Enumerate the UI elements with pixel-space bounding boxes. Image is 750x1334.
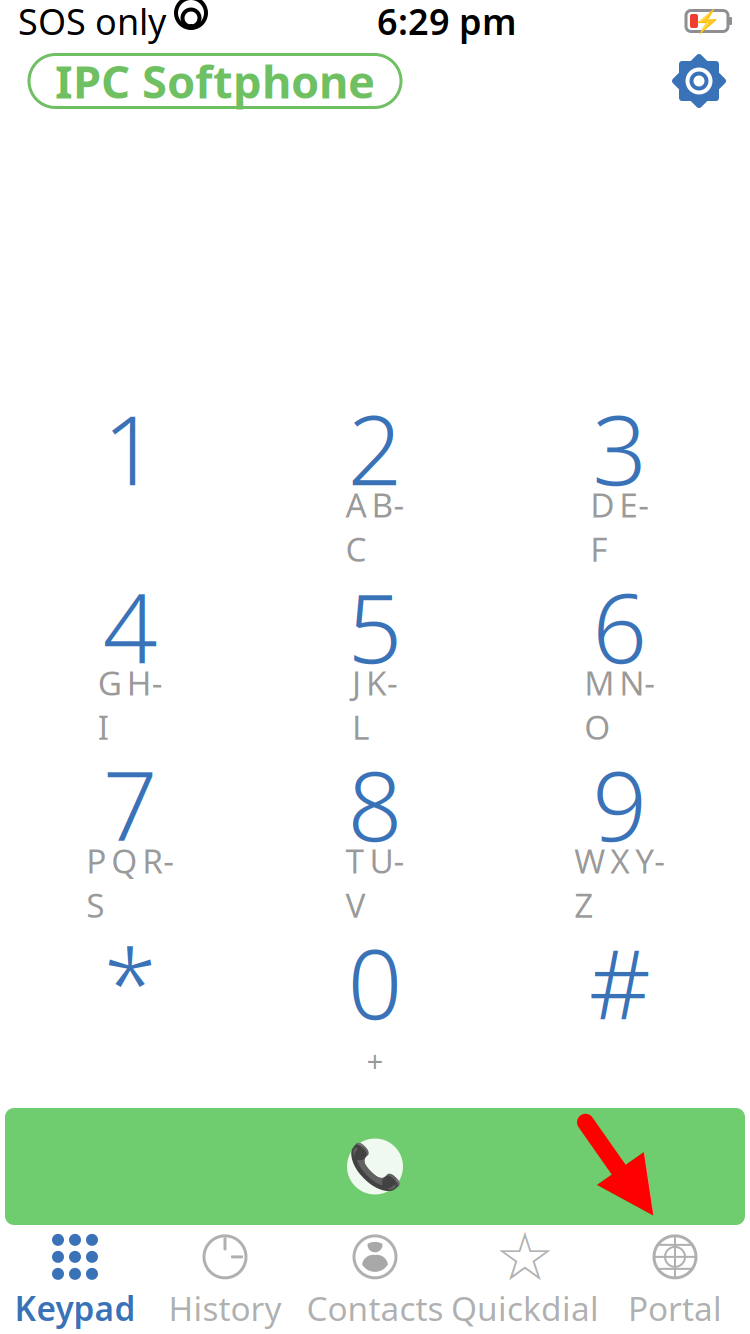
button[interactable]: *: [8, 908, 253, 1086]
staticText: ⚡: [693, 8, 721, 34]
button[interactable]: 8: [253, 730, 497, 908]
button[interactable]: Call: [5, 1108, 745, 1225]
staticText: 9: [592, 740, 647, 868]
staticText: ABC: [345, 482, 404, 571]
staticText: *: [104, 918, 157, 1046]
staticText: PQRS: [86, 838, 174, 927]
staticText: JKL: [352, 660, 398, 749]
button[interactable]: Settings: [677, 59, 721, 103]
staticText: Portal: [628, 1286, 722, 1330]
button[interactable]: 1: [8, 374, 253, 552]
staticText: SOS only: [18, 0, 166, 45]
staticText: +: [366, 1041, 383, 1080]
staticText: 2: [347, 384, 402, 512]
staticText: #: [589, 918, 651, 1046]
staticText: ▼: [604, 1145, 661, 1229]
button[interactable]: Keypad: [0, 1230, 150, 1334]
staticText: 8: [347, 740, 402, 868]
staticText: 5: [347, 562, 402, 690]
button[interactable]: 4: [8, 552, 253, 730]
staticText: ☆: [495, 1219, 555, 1295]
button[interactable]: 9: [497, 730, 742, 908]
staticText: MNO: [584, 660, 655, 749]
staticText: GHI: [98, 660, 163, 749]
staticText: 1: [103, 384, 158, 512]
staticText: Keypad: [14, 1286, 135, 1330]
button[interactable]: 2: [253, 374, 497, 552]
button[interactable]: 0: [253, 908, 497, 1086]
button[interactable]: IPC Softphone: [29, 54, 401, 107]
button[interactable]: 5: [253, 552, 497, 730]
staticText: 0: [347, 918, 402, 1046]
button[interactable]: 6: [497, 552, 742, 730]
staticText: IPC Softphone: [55, 51, 375, 111]
button[interactable]: 3: [497, 374, 742, 552]
staticText: Quickdial: [451, 1286, 599, 1330]
staticText: 📞: [347, 1141, 402, 1192]
button[interactable]: Portal: [600, 1230, 750, 1334]
button[interactable]: 7: [8, 730, 253, 908]
staticText: History: [168, 1286, 281, 1330]
staticText: WXYZ: [574, 838, 665, 927]
staticText: 3: [592, 384, 647, 512]
staticText: 6: [592, 562, 647, 690]
button[interactable]: #: [497, 908, 742, 1086]
button[interactable]: Contacts: [300, 1230, 450, 1334]
staticText: 7: [103, 740, 158, 868]
staticText: 6:29 pm: [377, 0, 517, 45]
staticText: Contacts: [306, 1286, 443, 1330]
button[interactable]: ☆: [450, 1230, 600, 1334]
button[interactable]: History: [150, 1230, 300, 1334]
staticText: TUV: [345, 838, 404, 927]
staticText: DEF: [590, 482, 649, 571]
staticText: 4: [103, 562, 158, 690]
